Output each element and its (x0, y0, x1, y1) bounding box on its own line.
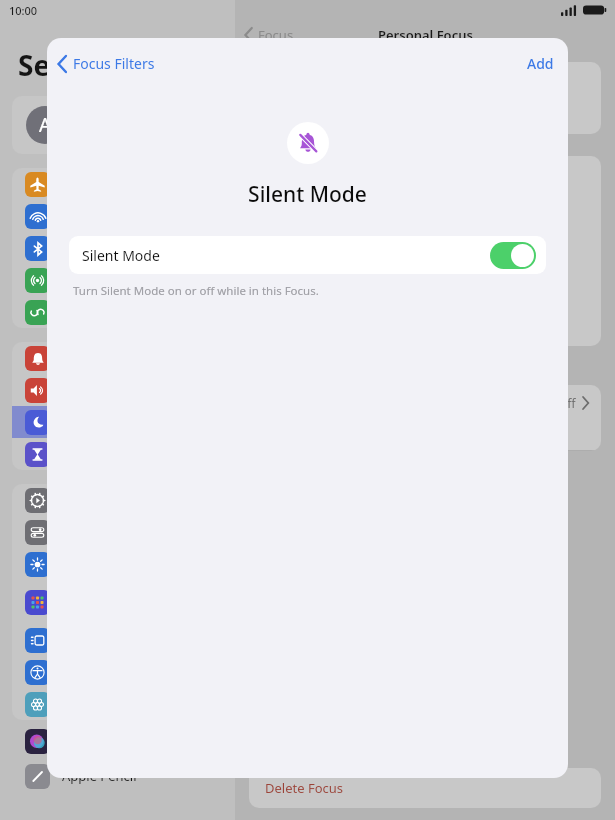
button[interactable]: Focus Filters (58, 54, 155, 73)
button[interactable] (12, 688, 222, 720)
button[interactable] (12, 586, 222, 618)
button[interactable] (12, 438, 222, 470)
staticText: Focus Filters (73, 54, 155, 73)
button[interactable] (12, 406, 222, 438)
button[interactable] (12, 200, 222, 232)
staticText: Apple Pencil (62, 767, 137, 785)
staticText: Silent Mode (47, 180, 568, 209)
button[interactable] (12, 296, 222, 328)
staticText: Off (558, 395, 576, 411)
button[interactable] (12, 484, 222, 516)
button[interactable]: Silent Mode toggle (490, 242, 536, 269)
staticText: Settings (18, 46, 133, 84)
button[interactable] (12, 342, 222, 374)
staticText: Silent Mode (82, 246, 160, 265)
button[interactable] (12, 264, 222, 296)
button[interactable] (12, 548, 222, 580)
button[interactable] (12, 656, 222, 688)
button[interactable]: Silent Mode (69, 236, 546, 274)
button[interactable] (12, 232, 222, 264)
staticText: 10:00 (9, 3, 38, 18)
staticText: Turn Silent Mode on or off while in this… (73, 283, 319, 299)
button[interactable]: Add (527, 54, 554, 73)
staticText: Add (527, 54, 554, 73)
button[interactable]: Siri & Search (0, 724, 235, 758)
staticText: A (39, 112, 52, 138)
button[interactable] (12, 516, 222, 548)
staticText: Personal Focus (378, 26, 473, 44)
button[interactable]: Delete Focus (249, 768, 601, 808)
button[interactable]: A (12, 96, 222, 154)
button[interactable] (12, 374, 222, 406)
staticText: Focus (258, 26, 294, 44)
staticText: Delete Focus (265, 779, 344, 797)
button[interactable]: Apple Pencil (0, 759, 235, 793)
button[interactable] (12, 624, 222, 656)
button[interactable]: Focus (245, 26, 294, 44)
button[interactable] (12, 168, 222, 200)
